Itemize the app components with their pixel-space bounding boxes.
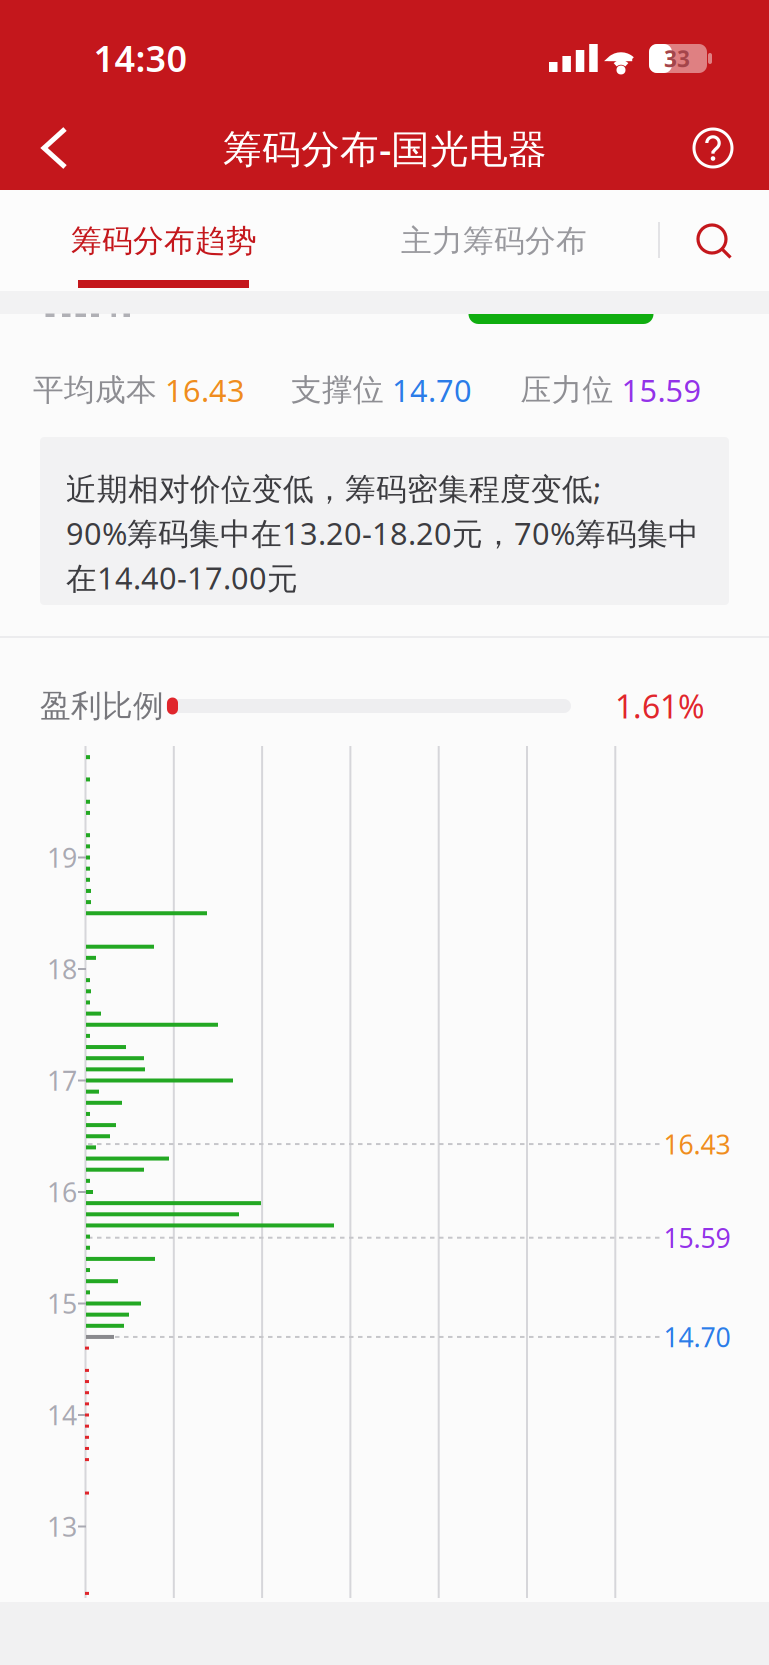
staticText: 15 bbox=[47, 1286, 77, 1321]
button[interactable]: 筹码分布趋势 bbox=[71, 222, 257, 260]
button[interactable]: 设置提醒 bbox=[468, 270, 653, 324]
staticText: 盈利比例 bbox=[40, 687, 164, 725]
staticText: 33 bbox=[664, 43, 690, 73]
staticText: 14 bbox=[47, 1397, 77, 1433]
staticText: 15.59 bbox=[621, 370, 701, 410]
staticText: 1.61% bbox=[615, 685, 705, 727]
staticText: 筹码分布-国光电器 bbox=[223, 122, 547, 174]
button[interactable]: 返回 bbox=[44, 129, 65, 167]
staticText: 17 bbox=[47, 1063, 77, 1098]
staticText: 14:30 bbox=[93, 34, 187, 82]
staticText: 筹码分布趋势 bbox=[71, 222, 257, 260]
staticText: 16.43 bbox=[663, 1126, 730, 1162]
staticText: 13 bbox=[47, 1509, 77, 1544]
button[interactable]: 帮助 bbox=[692, 127, 733, 168]
staticText: 18 bbox=[47, 951, 77, 987]
staticText: 15.59 bbox=[663, 1220, 730, 1255]
staticText: 主力筹码分布 bbox=[401, 222, 587, 260]
staticText: 14.70 bbox=[392, 370, 472, 410]
staticText: 14.70 bbox=[663, 1319, 730, 1355]
staticText: 16.43 bbox=[165, 370, 245, 410]
button[interactable]: 主力筹码分布 bbox=[401, 222, 587, 260]
staticText: 19 bbox=[47, 840, 77, 875]
staticText: 16 bbox=[47, 1174, 77, 1210]
staticText: 支撑位 bbox=[291, 371, 384, 409]
staticText: 近期相对价位变低，筹码密集程度变低; 90%筹码集中在13.20-18.20元，… bbox=[66, 468, 699, 598]
staticText: 压力位 bbox=[520, 371, 613, 409]
staticText: 平均成本 bbox=[33, 371, 157, 409]
button[interactable]: 搜索 bbox=[689, 219, 735, 265]
